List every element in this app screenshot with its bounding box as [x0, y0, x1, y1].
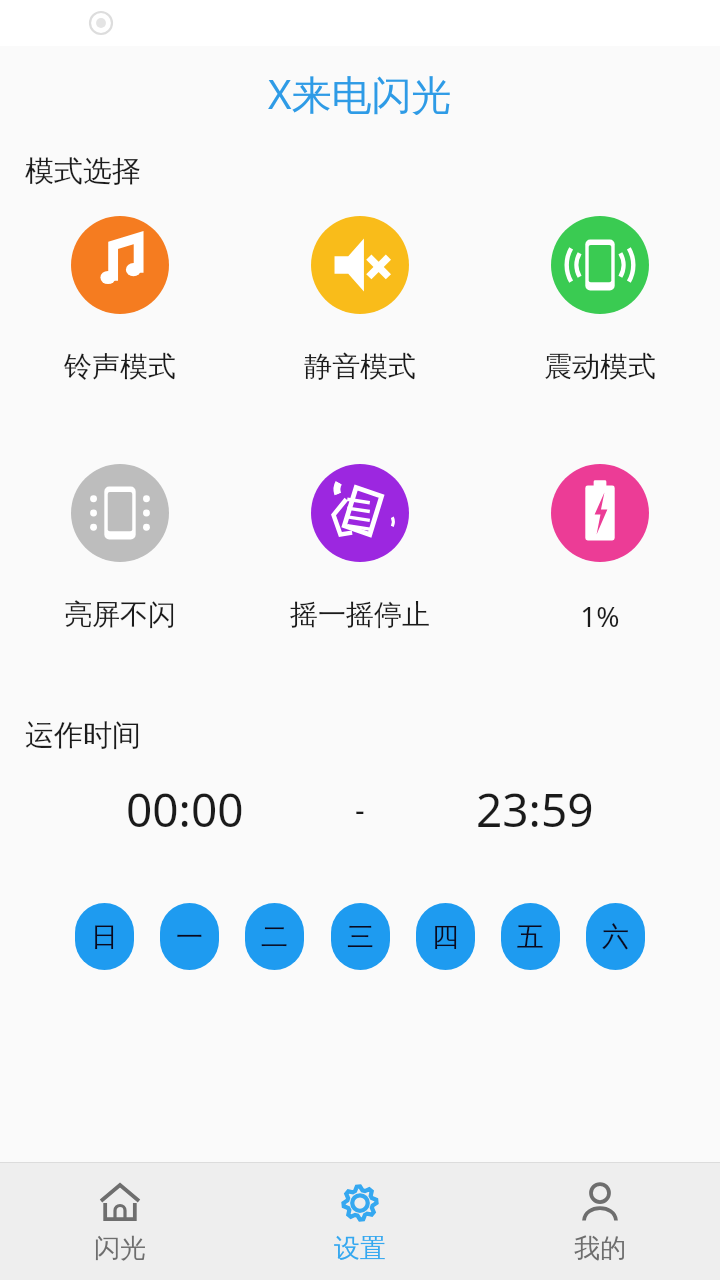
- button[interactable]: 六: [586, 903, 645, 970]
- other: 摇一摇停止: [311, 464, 409, 562]
- button[interactable]: 闪光: [0, 1163, 240, 1280]
- staticText: 一: [176, 920, 203, 954]
- staticText: 铃声模式: [64, 349, 176, 384]
- staticText: 摇一摇停止: [290, 597, 430, 632]
- button[interactable]: 我的: [480, 1163, 720, 1280]
- staticText: 1%: [580, 597, 620, 635]
- other: 1%: [551, 464, 649, 562]
- staticText: 六: [602, 920, 629, 954]
- staticText: 设置: [334, 1232, 386, 1265]
- staticText: 四: [432, 920, 459, 954]
- button[interactable]: 00:00: [40, 778, 330, 841]
- staticText: 二: [261, 920, 288, 954]
- button[interactable]: 摇一摇停止: [240, 464, 480, 632]
- button[interactable]: 日: [75, 903, 134, 970]
- staticText: 运作时间: [25, 717, 141, 754]
- other: 静音模式: [311, 216, 409, 314]
- button[interactable]: 设置: [240, 1163, 480, 1280]
- other: 震动模式: [551, 216, 649, 314]
- staticText: 闪光: [94, 1232, 146, 1265]
- other: 铃声模式: [71, 216, 169, 314]
- button[interactable]: 四: [416, 903, 475, 970]
- staticText: 模式选择: [25, 153, 141, 190]
- staticText: 静音模式: [304, 349, 416, 384]
- staticText: 亮屏不闪: [64, 597, 176, 632]
- staticText: 23:59: [476, 778, 594, 841]
- staticText: 00:00: [126, 778, 244, 841]
- staticText: X来电闪光: [268, 66, 452, 121]
- button[interactable]: 震动模式: [480, 216, 720, 384]
- staticText: 震动模式: [544, 349, 656, 384]
- button[interactable]: 一: [160, 903, 219, 970]
- staticText: -: [355, 789, 365, 830]
- button[interactable]: 铃声模式: [0, 216, 240, 384]
- button[interactable]: 亮屏不闪: [0, 464, 240, 632]
- staticText: 我的: [574, 1232, 626, 1265]
- button[interactable]: 1%: [480, 464, 720, 635]
- button[interactable]: 23:59: [390, 778, 680, 841]
- button[interactable]: 二: [245, 903, 304, 970]
- staticText: 日: [91, 920, 118, 954]
- other: 亮屏不闪: [71, 464, 169, 562]
- staticText: 五: [517, 920, 544, 954]
- staticText: 三: [347, 920, 374, 954]
- button[interactable]: 三: [331, 903, 390, 970]
- button[interactable]: 静音模式: [240, 216, 480, 384]
- button[interactable]: 五: [501, 903, 560, 970]
